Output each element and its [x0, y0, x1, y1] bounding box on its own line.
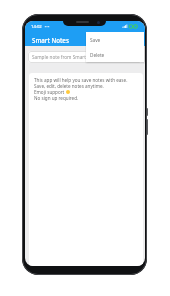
staticText: Delete — [90, 52, 105, 58]
staticText: Sample note from Smart — [32, 54, 86, 60]
staticText: Smart Notes — [32, 36, 69, 44]
staticText: This app will help you save notes with e… — [34, 77, 128, 83]
staticText: Emoji support — [34, 89, 66, 95]
staticText: No sign up required. — [34, 95, 79, 101]
staticText: 14:02 — [31, 24, 42, 30]
staticText: Save — [90, 37, 101, 43]
staticText: Save, edit, delete notes anytime. — [34, 83, 104, 89]
button[interactable]: Save — [86, 32, 144, 47]
button[interactable]: Sample note from Smart — [28, 51, 142, 63]
button[interactable]: Delete — [86, 47, 144, 62]
